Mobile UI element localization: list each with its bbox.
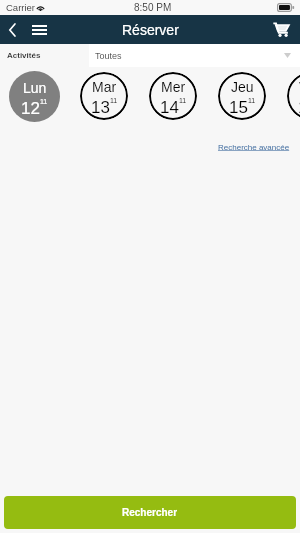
button[interactable]: Rechercher	[4, 496, 296, 529]
staticText: Ven	[299, 79, 300, 95]
button[interactable]: Mer	[149, 72, 197, 120]
staticText: Toutes	[95, 51, 122, 61]
button[interactable]: Ven	[287, 72, 300, 120]
button[interactable]: Back	[0, 15, 24, 44]
staticText: Activités	[7, 51, 41, 60]
button[interactable]: Lun	[9, 71, 60, 122]
staticText: Lun	[23, 80, 47, 96]
staticText: Rechercher	[122, 507, 178, 518]
staticText: Mar	[92, 79, 117, 95]
button[interactable]: Jeu	[218, 72, 266, 120]
staticText: Réserver	[122, 22, 179, 38]
staticText: 1311	[91, 97, 118, 117]
staticText: Mer	[161, 79, 186, 95]
button[interactable]: Menu	[26, 15, 52, 44]
staticText: 1611	[298, 97, 300, 117]
button[interactable]: Cart	[270, 15, 292, 44]
staticText: 1211	[21, 98, 48, 118]
button[interactable]: Recherche avancée	[218, 143, 290, 152]
staticText: Carrier	[6, 2, 36, 13]
staticText: Jeu	[231, 79, 254, 95]
button[interactable]: Toutes	[89, 44, 300, 67]
staticText: 1411	[160, 97, 187, 117]
staticText: 8:50 PM	[134, 2, 172, 13]
staticText: 1511	[229, 97, 256, 117]
button[interactable]: Mar	[80, 72, 128, 120]
